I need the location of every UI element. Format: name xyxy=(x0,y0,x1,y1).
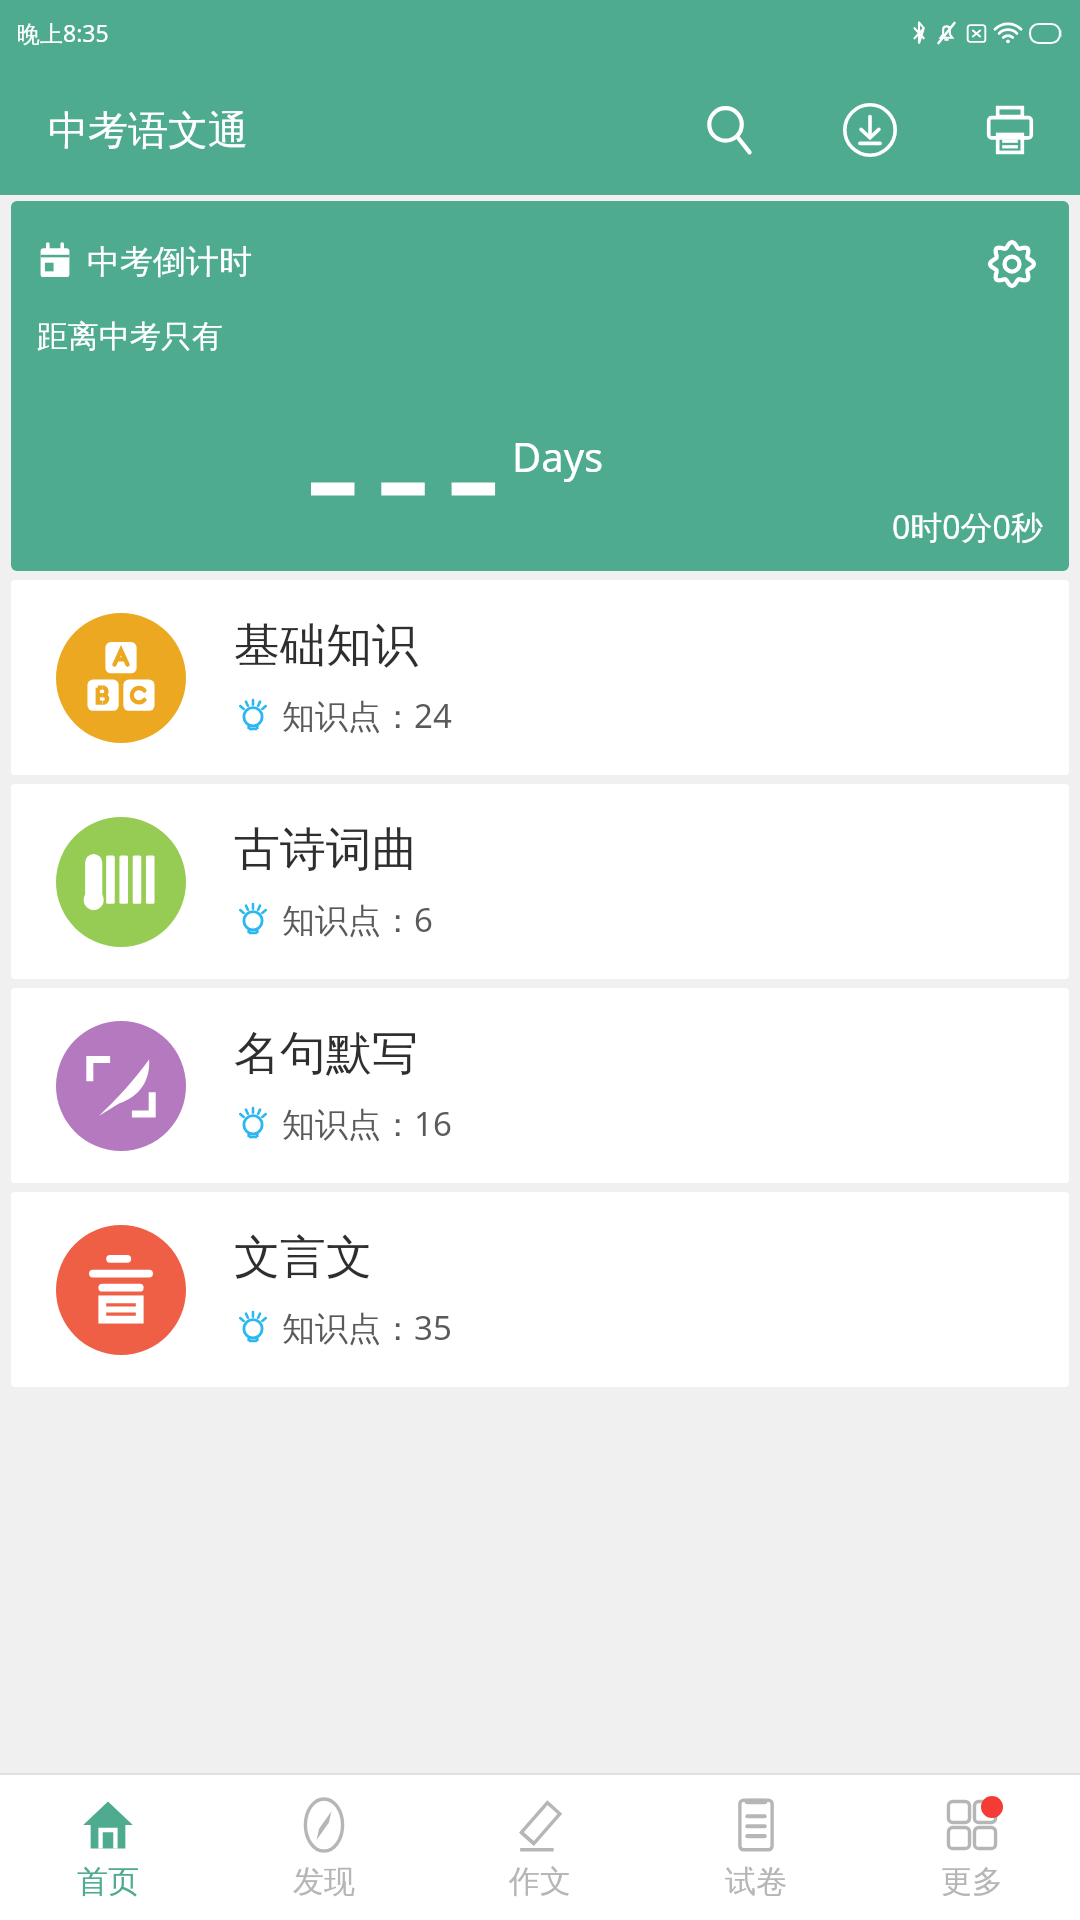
button[interactable]: 更多 xyxy=(864,1775,1080,1920)
staticText: 名句默写 xyxy=(234,1025,418,1083)
staticText: 知识点：24 xyxy=(282,693,452,738)
button[interactable]: 发现 xyxy=(216,1775,432,1920)
button[interactable]: 基础知识 xyxy=(11,580,1069,775)
staticText: 知识点：6 xyxy=(282,897,433,942)
staticText: 更多 xyxy=(941,1862,1003,1901)
staticText: 中考语文通 xyxy=(48,105,248,155)
button[interactable]: Print xyxy=(970,90,1050,170)
button[interactable]: 文言文 xyxy=(11,1192,1069,1387)
button[interactable]: 作文 xyxy=(432,1775,648,1920)
staticText: 距离中考只有 xyxy=(37,317,223,356)
staticText: 中考倒计时 xyxy=(87,241,252,283)
button[interactable]: 中考倒计时 xyxy=(11,201,1069,571)
staticText: 0时0分0秒 xyxy=(892,505,1043,549)
staticText: 基础知识 xyxy=(234,617,418,675)
button[interactable]: 古诗词曲 xyxy=(11,784,1069,979)
button[interactable]: Search xyxy=(690,90,770,170)
button[interactable]: 试卷 xyxy=(648,1775,864,1920)
staticText: 首页 xyxy=(77,1862,139,1901)
staticText: 发现 xyxy=(293,1862,355,1901)
staticText: 试卷 xyxy=(725,1862,787,1901)
staticText: 古诗词曲 xyxy=(234,821,418,879)
staticText: 作文 xyxy=(509,1862,571,1901)
button[interactable]: Settings xyxy=(979,231,1045,297)
staticText: Days xyxy=(512,429,604,483)
button[interactable]: 名句默写 xyxy=(11,988,1069,1183)
staticText: 知识点：35 xyxy=(282,1305,452,1350)
button[interactable]: Download xyxy=(830,90,910,170)
staticText: 知识点：16 xyxy=(282,1101,452,1146)
staticText: 晚上8:35 xyxy=(17,17,109,48)
staticText: 文言文 xyxy=(234,1229,372,1287)
button[interactable]: 首页 xyxy=(0,1775,216,1920)
